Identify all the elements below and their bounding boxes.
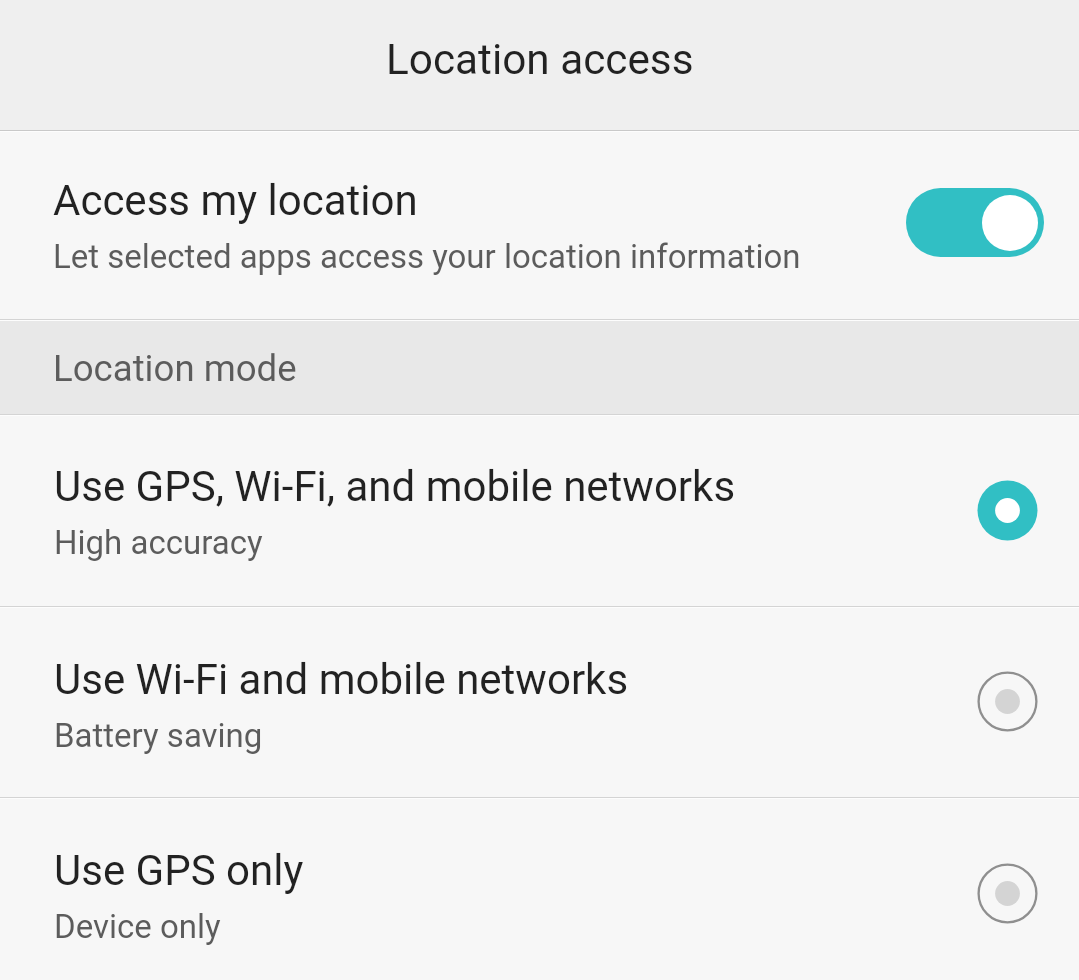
staticText: Let selected apps access your location i…: [53, 237, 801, 276]
staticText: Use GPS only: [54, 846, 304, 895]
staticText: Device only: [54, 907, 221, 946]
other: Use Wi-Fi and mobile networks: [977, 671, 1038, 732]
other: Use GPS, Wi-Fi, and mobile networks: [977, 480, 1038, 541]
staticText: High accuracy: [54, 523, 263, 562]
button[interactable]: Access my location switch, on: [906, 188, 1044, 257]
other: Use GPS only: [977, 863, 1038, 924]
staticText: Use GPS, Wi-Fi, and mobile networks: [54, 462, 736, 511]
button[interactable]: Use GPS, Wi-Fi, and mobile networks: [0, 416, 1079, 606]
staticText: Use Wi-Fi and mobile networks: [54, 655, 629, 704]
button[interactable]: Access my location: [0, 132, 1079, 319]
staticText: Location mode: [53, 347, 297, 390]
button[interactable]: Use Wi-Fi and mobile networks: [0, 608, 1079, 797]
staticText: Access my location: [53, 176, 418, 225]
staticText: Location access: [386, 35, 694, 85]
staticText: Battery saving: [54, 716, 263, 755]
button[interactable]: Use GPS only: [0, 799, 1079, 980]
